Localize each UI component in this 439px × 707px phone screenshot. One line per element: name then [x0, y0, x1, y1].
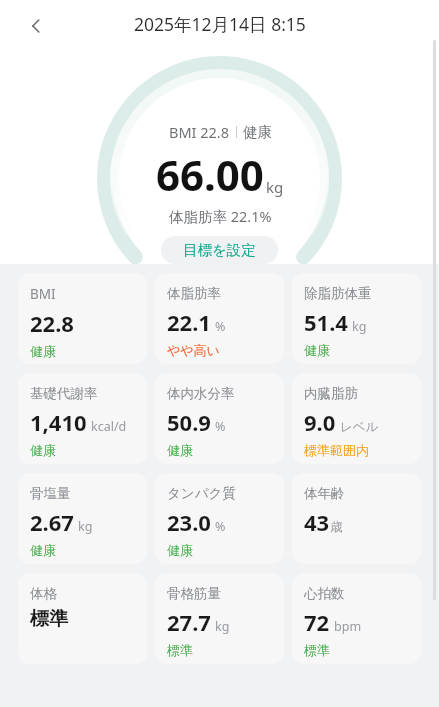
staticText: 体年齢: [304, 485, 345, 502]
staticText: 健康: [167, 542, 193, 558]
staticText: kcal/d: [91, 418, 127, 435]
staticText: 66.00: [156, 146, 264, 203]
staticText: 27.7: [167, 607, 211, 637]
staticText: 9.0: [304, 407, 336, 437]
staticText: 健康: [30, 442, 56, 458]
staticText: 標準範囲内: [304, 442, 369, 458]
staticText: 健康: [167, 442, 193, 458]
staticText: 43: [304, 507, 330, 537]
button[interactable]: 目標を設定: [161, 236, 278, 264]
button[interactable]: Back: [14, 4, 58, 48]
staticText: 標準: [304, 642, 330, 658]
staticText: 72: [304, 607, 330, 637]
button[interactable]: タンパク質: [155, 473, 284, 564]
staticText: 骨塩量: [30, 485, 71, 502]
button[interactable]: 基礎代謝率: [18, 373, 147, 464]
staticText: kg: [78, 518, 93, 535]
button[interactable]: 心拍数: [292, 573, 421, 664]
staticText: 50.9: [167, 407, 211, 437]
staticText: 体格: [30, 585, 57, 602]
staticText: やや高い: [167, 342, 220, 358]
staticText: 基礎代謝率: [30, 385, 98, 402]
button[interactable]: 体脂肪率: [155, 273, 284, 364]
staticText: 51.4: [304, 307, 348, 337]
button[interactable]: 骨塩量: [18, 473, 147, 564]
staticText: 骨格筋量: [167, 585, 221, 602]
staticText: 健康: [30, 542, 56, 558]
staticText: kg: [215, 618, 230, 635]
button[interactable]: BMI: [18, 273, 147, 364]
staticText: kg: [266, 177, 284, 197]
button[interactable]: 体内水分率: [155, 373, 284, 464]
staticText: %: [215, 418, 226, 435]
button[interactable]: 体格: [18, 573, 147, 664]
button[interactable]: 内臓脂肪: [292, 373, 421, 464]
staticText: 22.8: [30, 308, 74, 338]
staticText: 健康: [30, 343, 56, 359]
staticText: 標準: [167, 642, 193, 658]
staticText: 除脂肪体重: [304, 285, 372, 302]
staticText: BMI 22.8: [169, 122, 230, 142]
staticText: 体脂肪率 22.1%: [169, 206, 272, 226]
staticText: 23.0: [167, 507, 211, 537]
staticText: タンパク質: [167, 485, 236, 502]
staticText: 体脂肪率: [167, 285, 221, 302]
staticText: %: [215, 518, 226, 535]
staticText: bpm: [334, 618, 362, 635]
staticText: kg: [352, 318, 367, 335]
staticText: 標準: [30, 607, 68, 631]
staticText: 22.1: [167, 307, 211, 337]
staticText: 内臓脂肪: [304, 385, 358, 402]
staticText: 心拍数: [304, 585, 345, 602]
staticText: 1,410: [30, 407, 87, 437]
button[interactable]: 除脂肪体重: [292, 273, 421, 364]
staticText: BMI: [30, 285, 56, 303]
staticText: 健康: [243, 123, 272, 141]
staticText: 健康: [304, 342, 330, 358]
staticText: 目標を設定: [183, 241, 256, 259]
staticText: 体内水分率: [167, 385, 235, 402]
staticText: レベル: [340, 419, 379, 435]
staticText: 2025年12月14日 8:15: [134, 12, 306, 36]
staticText: %: [215, 318, 226, 335]
button[interactable]: 骨格筋量: [155, 573, 284, 664]
button[interactable]: 体年齢: [292, 473, 421, 564]
staticText: 歳: [330, 519, 343, 535]
staticText: 2.67: [30, 507, 74, 537]
